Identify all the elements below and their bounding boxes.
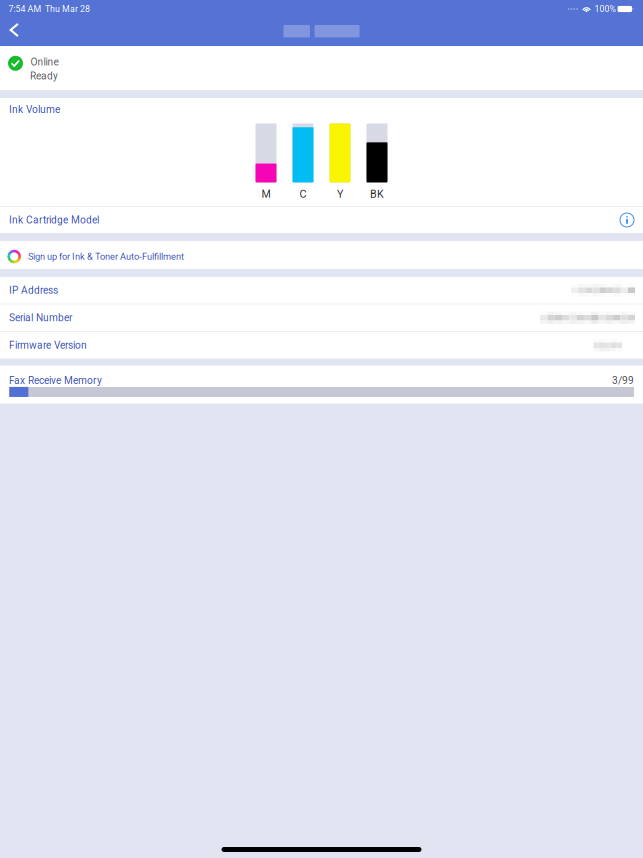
staticText: Ink Cartridge Model: [9, 214, 99, 226]
staticText: Thu Mar 28: [45, 4, 90, 14]
staticText: Sign up for Ink & Toner Auto-Fulfillment: [28, 251, 184, 262]
button[interactable]: Back: [2, 18, 26, 42]
staticText: C: [299, 188, 306, 200]
staticText: 7:54 AM: [8, 4, 41, 14]
staticText: IP Address: [9, 284, 58, 296]
staticText: 3/99: [612, 375, 634, 386]
staticText: Fax Receive Memory: [9, 375, 102, 386]
button[interactable]: Ink Cartridge Model: [0, 207, 643, 233]
staticText: Ink Volume: [9, 104, 60, 115]
button[interactable]: Sign up for Ink & Toner Auto-Fulfillment: [0, 241, 643, 269]
staticText: Y: [337, 188, 343, 200]
staticText: Firmware Version: [9, 339, 87, 351]
staticText: Serial Number: [9, 312, 72, 324]
staticText: Online: [30, 56, 58, 68]
staticText: M: [261, 188, 270, 200]
staticText: BK: [370, 188, 384, 200]
staticText: Ready: [30, 70, 58, 82]
staticText: 100%: [594, 4, 615, 14]
